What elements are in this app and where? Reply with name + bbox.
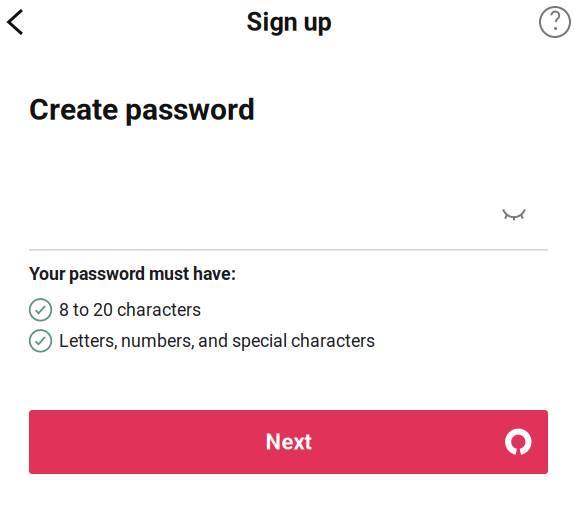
staticText: Next <box>265 429 311 455</box>
staticText: Create password <box>29 92 255 127</box>
button[interactable]: Next <box>29 410 548 474</box>
staticText: Sign up <box>246 7 331 37</box>
button[interactable]: Help <box>536 0 574 44</box>
staticText: Your password must have: <box>29 264 236 284</box>
button[interactable]: Back <box>0 0 31 44</box>
staticText: 8 to 20 characters <box>59 299 201 320</box>
staticText: Letters, numbers, and special characters <box>59 330 375 351</box>
button[interactable]: Show password <box>495 194 533 232</box>
